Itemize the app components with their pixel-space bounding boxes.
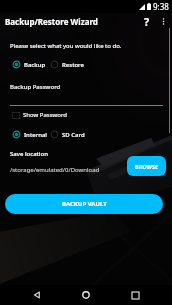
staticText: 9:38 — [153, 1, 169, 12]
staticText: Internal — [24, 131, 47, 139]
button[interactable]: Home — [74, 285, 98, 305]
staticText: Backup — [24, 61, 46, 69]
button[interactable]: Internal — [12, 130, 47, 139]
button[interactable]: Recent apps — [123, 285, 147, 305]
staticText: /storage/emulated/0/Download — [10, 166, 100, 174]
staticText: SD Card — [62, 131, 85, 139]
button[interactable]: Show Password — [12, 111, 67, 119]
button[interactable]: More options — [155, 13, 172, 30]
button[interactable]: Help — [138, 13, 155, 30]
button[interactable]: Restore — [50, 60, 84, 69]
button[interactable]: Back — [25, 285, 49, 305]
staticText: Backup/Restore Wizard — [5, 16, 138, 27]
staticText: Show Password — [23, 111, 67, 119]
staticText: Save location — [10, 150, 48, 158]
staticText: BROWSE — [135, 163, 158, 170]
staticText: Backup Password — [10, 83, 61, 91]
staticText: Restore — [62, 61, 84, 69]
button[interactable]: BACKUP VAULT — [5, 194, 163, 214]
staticText: Please select what you would like to do. — [10, 42, 122, 50]
button[interactable]: SD Card — [50, 130, 85, 139]
button[interactable]: BROWSE — [127, 156, 166, 176]
button[interactable]: Backup — [12, 60, 46, 69]
staticText: BACKUP VAULT — [62, 200, 107, 208]
staticText: ? — [144, 14, 150, 29]
